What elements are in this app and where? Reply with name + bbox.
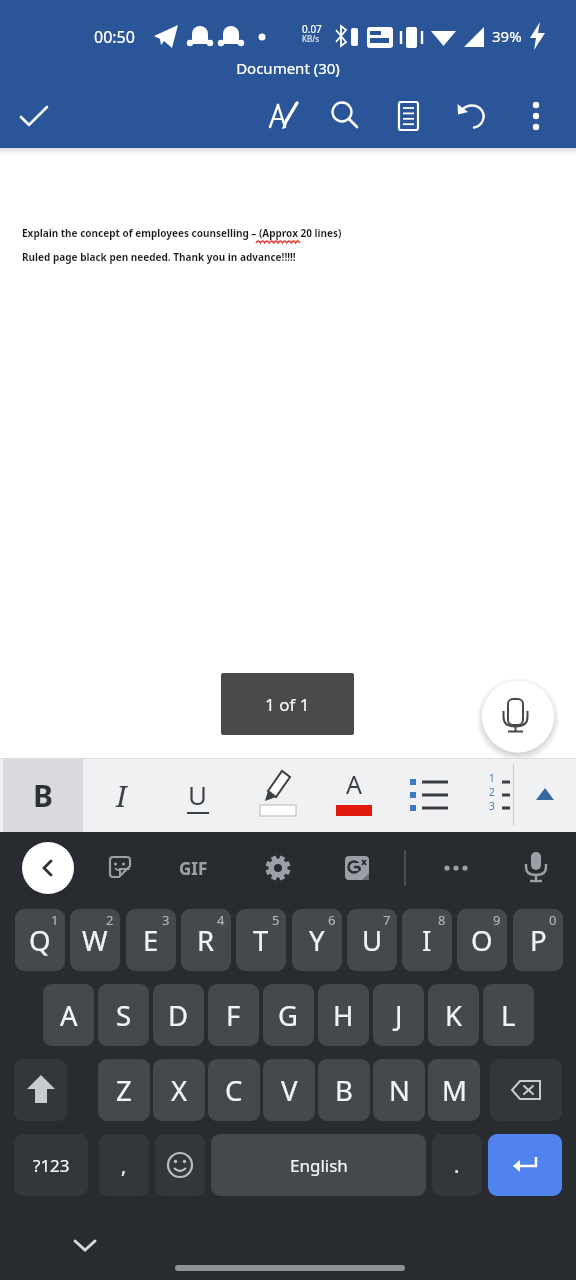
staticText: Z [116, 1072, 132, 1109]
staticText: 4 [217, 911, 225, 929]
button[interactable]: L [483, 984, 534, 1046]
button[interactable] [260, 850, 296, 886]
button[interactable] [452, 97, 490, 135]
staticText: B [335, 1072, 353, 1109]
button[interactable] [475, 673, 563, 761]
button[interactable]: 1 [480, 759, 512, 832]
button[interactable]: E [126, 909, 176, 971]
button[interactable]: ?123 [14, 1134, 88, 1196]
staticText: 1 [489, 771, 495, 785]
staticText: English [290, 1154, 348, 1177]
button[interactable]: D [153, 984, 204, 1046]
staticText: Explain the concept of employees counsel… [22, 226, 342, 240]
staticText: U [188, 777, 208, 812]
staticText: Q [29, 922, 51, 959]
staticText: X [171, 1072, 188, 1109]
staticText: P [530, 922, 547, 959]
button[interactable] [248, 759, 308, 832]
staticText: K [445, 997, 463, 1034]
staticText: A [346, 767, 362, 801]
button[interactable]: C [208, 1059, 260, 1121]
staticText: R [197, 922, 215, 959]
button[interactable] [488, 1134, 562, 1196]
button[interactable]: U [347, 909, 397, 971]
staticText: 1 [51, 911, 59, 929]
staticText: 5 [272, 911, 280, 929]
button[interactable]: V [263, 1059, 315, 1121]
staticText: ?123 [33, 1154, 70, 1177]
button[interactable]: Y [292, 909, 342, 971]
button[interactable] [265, 97, 303, 135]
staticText: E [143, 922, 159, 959]
button[interactable] [402, 759, 462, 832]
staticText: H [333, 997, 354, 1034]
button[interactable] [22, 842, 74, 894]
staticText: 0 [549, 911, 557, 929]
button[interactable] [155, 1134, 205, 1196]
staticText: T [253, 922, 269, 959]
staticText: W [82, 922, 108, 959]
staticText: F [226, 997, 241, 1034]
button[interactable] [340, 850, 376, 886]
staticText: D [168, 997, 189, 1034]
button[interactable]: A [324, 759, 384, 832]
button[interactable]: N [373, 1059, 425, 1121]
button[interactable]: Z [98, 1059, 150, 1121]
button[interactable]: B [3, 759, 83, 832]
staticText: U [362, 922, 383, 959]
button[interactable]: P [513, 909, 563, 971]
staticText: M [442, 1072, 467, 1109]
button[interactable]: English [211, 1134, 426, 1196]
button[interactable]: M [428, 1059, 480, 1121]
button[interactable]: R [181, 909, 231, 971]
button[interactable]: G [263, 984, 314, 1046]
button[interactable] [326, 97, 364, 135]
button[interactable]: S [98, 984, 149, 1046]
button[interactable]: , [99, 1134, 149, 1196]
staticText: 39% [492, 26, 522, 46]
button[interactable] [490, 1059, 562, 1121]
button[interactable]: J [373, 984, 424, 1046]
button[interactable]: I [402, 909, 452, 971]
button[interactable]: I [92, 759, 150, 832]
button[interactable] [14, 1059, 67, 1121]
button[interactable]: O [457, 909, 507, 971]
button[interactable]: Q [15, 909, 65, 971]
button[interactable] [517, 848, 555, 888]
button[interactable]: H [318, 984, 369, 1046]
button[interactable]: K [428, 984, 479, 1046]
button[interactable]: F [208, 984, 259, 1046]
button[interactable] [438, 850, 474, 886]
button[interactable] [518, 97, 554, 135]
staticText: C [225, 1072, 243, 1109]
staticText: I [422, 922, 432, 959]
staticText: KB/s [302, 33, 319, 44]
button[interactable]: B [318, 1059, 370, 1121]
button[interactable]: T [236, 909, 286, 971]
staticText: Document (30) [0, 58, 576, 78]
staticText: O [471, 922, 493, 959]
staticText: 0.07 [302, 22, 322, 36]
staticText: 8 [438, 911, 446, 929]
staticText: 2 [106, 911, 114, 929]
staticText: S [116, 997, 132, 1034]
button[interactable]: W [70, 909, 120, 971]
button[interactable] [520, 759, 570, 832]
staticText: J [395, 997, 403, 1034]
button[interactable]: U [168, 759, 228, 832]
button[interactable]: A [43, 984, 94, 1046]
staticText: . [454, 1152, 460, 1179]
staticText: 3 [162, 911, 170, 929]
button[interactable] [16, 98, 52, 134]
button[interactable] [102, 850, 138, 886]
button[interactable] [390, 97, 428, 135]
button[interactable]: . [432, 1134, 482, 1196]
button[interactable]: X [153, 1059, 205, 1121]
staticText: 3 [489, 799, 495, 813]
staticText: V [281, 1072, 298, 1109]
staticText: Y [309, 922, 325, 959]
staticText: G [278, 997, 299, 1034]
staticText: 9 [493, 911, 501, 929]
button[interactable]: GIF [179, 857, 208, 880]
staticText: 6 [328, 911, 336, 929]
